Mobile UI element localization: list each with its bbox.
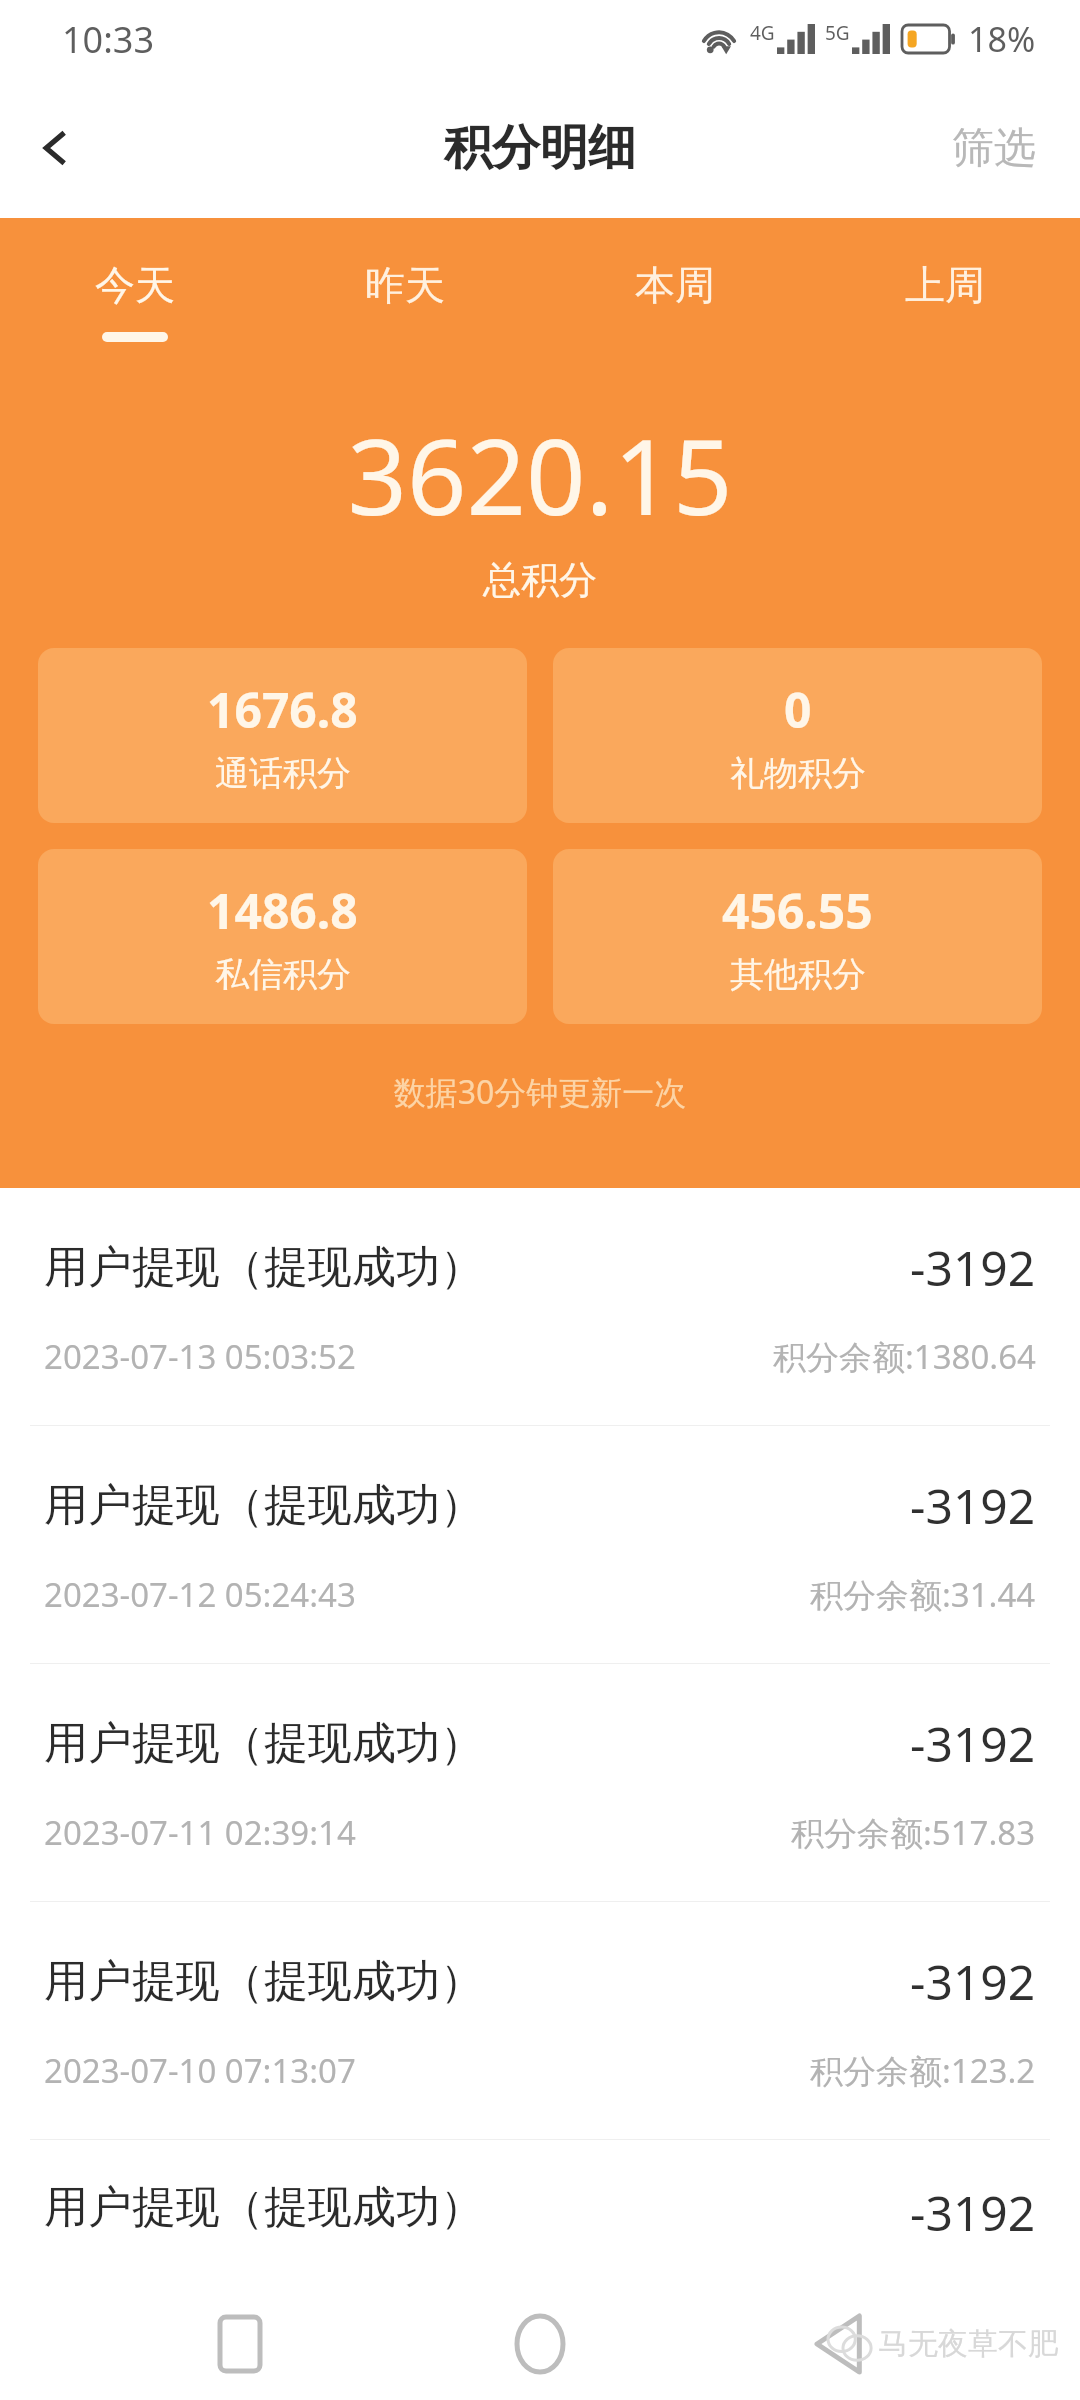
staticText: 2023-07-13 05:03:52 <box>44 1334 356 1379</box>
staticText: -3192 <box>910 2180 1036 2245</box>
staticText: 2023-07-12 05:24:43 <box>44 1572 356 1617</box>
button[interactable]: 用户提现（提现成功） <box>0 1188 1080 1425</box>
button[interactable]: 本周 <box>540 260 810 342</box>
button[interactable]: 用户提现（提现成功） <box>0 2140 1080 2260</box>
staticText: 用户提现（提现成功） <box>44 1954 484 2009</box>
button[interactable]: Recent apps <box>180 2288 300 2400</box>
staticText: 积分余额:31.44 <box>810 1572 1036 1617</box>
staticText: 数据30分钟更新一次 <box>0 1070 1080 1114</box>
staticText: 总积分 <box>0 556 1080 604</box>
staticText: 2023-07-10 07:13:07 <box>44 2048 356 2093</box>
staticText: 积分余额:1380.64 <box>773 1334 1036 1379</box>
staticText: 0 <box>784 677 812 742</box>
button[interactable]: 昨天 <box>270 260 540 342</box>
staticText: 5G <box>825 20 850 46</box>
staticText: 3620.15 <box>0 404 1080 546</box>
button[interactable]: 用户提现（提现成功） <box>0 1664 1080 1901</box>
staticText: 私信积分 <box>215 953 351 996</box>
staticText: 456.55 <box>722 878 873 943</box>
button[interactable]: 用户提现（提现成功） <box>0 1426 1080 1663</box>
staticText: 本周 <box>635 260 715 310</box>
staticText: 礼物积分 <box>730 752 866 795</box>
staticText: 4G <box>750 20 775 46</box>
staticText: -3192 <box>910 1711 1036 1776</box>
button[interactable]: 0 <box>553 648 1042 823</box>
staticText: 18% <box>968 16 1036 62</box>
button[interactable]: 筛选 <box>908 78 1080 218</box>
staticText: 1486.8 <box>207 878 358 943</box>
button[interactable]: 上周 <box>810 260 1080 342</box>
staticText: 筛选 <box>952 122 1036 175</box>
staticText: 10:33 <box>62 15 155 64</box>
staticText: 用户提现（提现成功） <box>44 1240 484 1295</box>
staticText: 积分余额:123.2 <box>810 2048 1036 2093</box>
staticText: 2023-07-11 02:39:14 <box>44 1810 356 1855</box>
button[interactable]: Back <box>780 2288 900 2400</box>
staticText: 积分明细 <box>444 118 636 178</box>
staticText: -3192 <box>910 1473 1036 1538</box>
staticText: 昨天 <box>365 260 445 310</box>
staticText: 上周 <box>905 260 985 310</box>
button[interactable]: Home <box>480 2288 600 2400</box>
staticText: 积分余额:517.83 <box>791 1810 1036 1855</box>
staticText: 用户提现（提现成功） <box>44 1716 484 1771</box>
button[interactable]: 今天 <box>0 260 270 342</box>
staticText: 通话积分 <box>215 752 351 795</box>
button[interactable]: 456.55 <box>553 849 1042 1024</box>
button[interactable]: 1486.8 <box>38 849 527 1024</box>
staticText: 用户提现（提现成功） <box>44 2180 484 2235</box>
staticText: 1676.8 <box>207 677 358 742</box>
button[interactable]: 用户提现（提现成功） <box>0 1902 1080 2139</box>
staticText: -3192 <box>910 1235 1036 1300</box>
button[interactable]: Back <box>0 78 110 218</box>
staticText: 今天 <box>95 260 175 310</box>
staticText: -3192 <box>910 1949 1036 2014</box>
staticText: 其他积分 <box>730 953 866 996</box>
staticText: 用户提现（提现成功） <box>44 1478 484 1533</box>
button[interactable]: 1676.8 <box>38 648 527 823</box>
staticText: 马无夜草不肥 <box>878 2325 1058 2363</box>
